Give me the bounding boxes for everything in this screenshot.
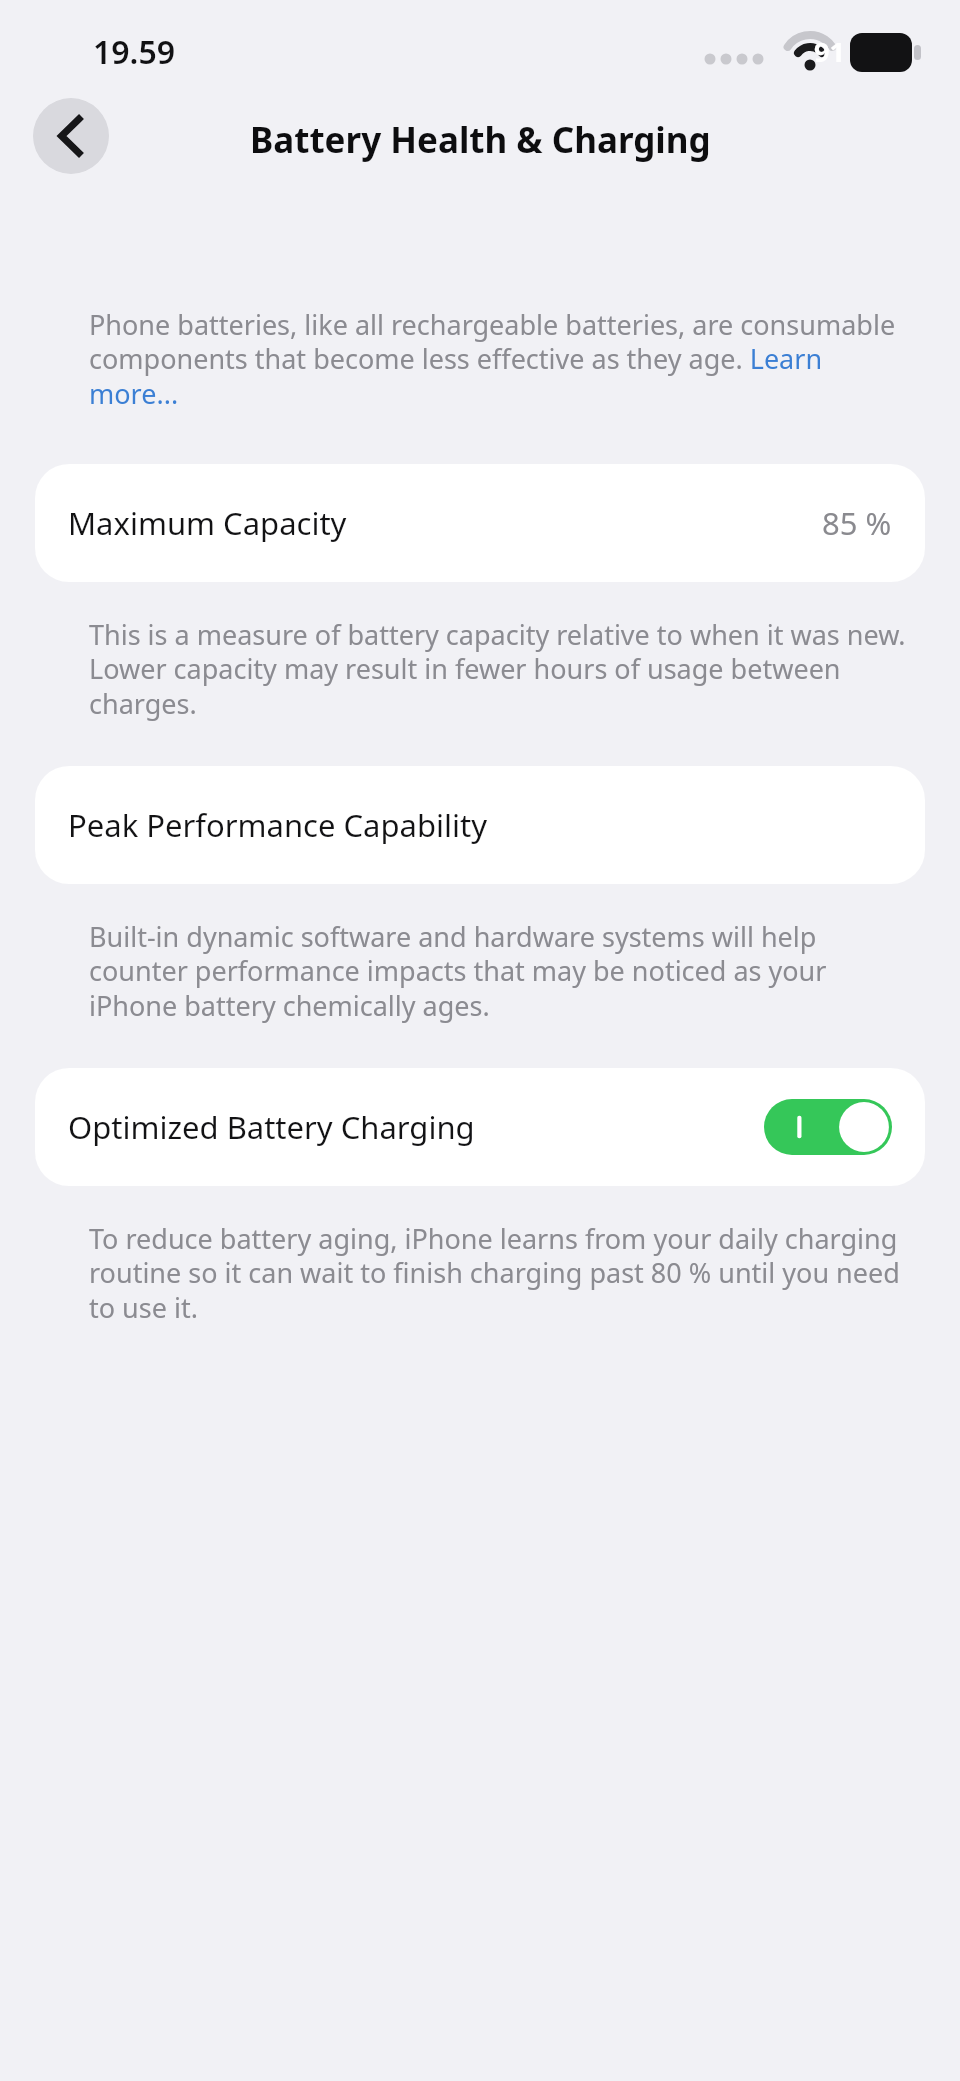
staticText: Peak Performance Capability	[68, 804, 487, 846]
button[interactable]: Optimized Battery Charging	[35, 1068, 925, 1186]
button[interactable]: Back	[33, 98, 109, 174]
staticText: Phone batteries, like all rechargeable b…	[89, 306, 908, 412]
staticText: This is a measure of battery capacity re…	[89, 616, 908, 722]
staticText: Optimized Battery Charging	[68, 1106, 475, 1148]
staticText: 85 %	[822, 502, 892, 544]
staticText: 19.59	[93, 30, 176, 74]
staticText: To reduce battery aging, iPhone learns f…	[89, 1220, 908, 1326]
button[interactable]: Peak Performance Capability	[35, 766, 925, 884]
staticText: 91	[814, 33, 845, 70]
staticText: Maximum Capacity	[68, 502, 347, 544]
staticText: Built-in dynamic software and hardware s…	[89, 918, 908, 1024]
button[interactable]: Maximum Capacity	[35, 464, 925, 582]
staticText: Battery Health & Charging	[250, 116, 711, 164]
button[interactable]: Optimized Battery Charging toggle, on	[764, 1099, 892, 1155]
